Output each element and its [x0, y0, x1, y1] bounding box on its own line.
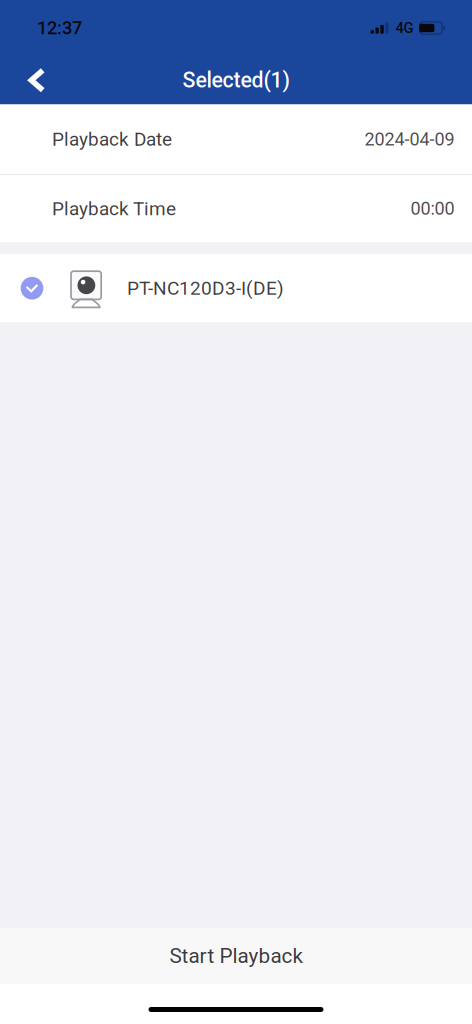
staticText: 12:37 [37, 17, 82, 39]
button[interactable]: Back [11, 54, 63, 106]
staticText: PT-NC120D3-I(DE) [127, 277, 284, 299]
staticText: Playback Time [52, 198, 176, 220]
staticText: Playback Date [52, 128, 172, 150]
staticText: 2024-04-09 [364, 129, 454, 150]
button[interactable]: Playback Time [0, 175, 472, 242]
button[interactable]: PT-NC120D3-I(DE) [0, 254, 472, 322]
staticText: 00:00 [410, 198, 454, 219]
staticText: 4G [396, 19, 414, 37]
staticText: Selected(1) [182, 68, 289, 93]
staticText: Start Playback [169, 944, 302, 968]
button[interactable]: Start Playback [0, 928, 472, 984]
button[interactable]: Playback Date [0, 104, 472, 174]
